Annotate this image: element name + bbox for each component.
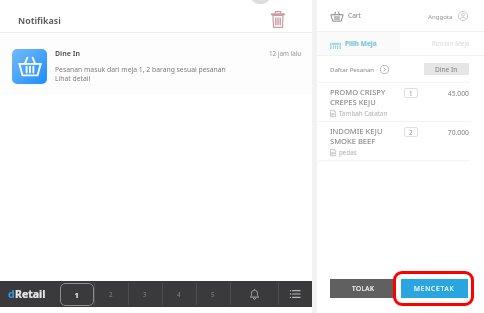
staticText: 4 <box>177 290 181 298</box>
button[interactable]: 4 <box>162 281 196 307</box>
button[interactable]: Hapus semua notifikasi <box>266 6 290 32</box>
staticText: TOLAK <box>352 284 375 293</box>
button[interactable]: Lanjut <box>380 65 389 74</box>
staticText: 1 <box>75 291 79 299</box>
staticText: Lihat detail <box>55 74 91 83</box>
staticText: Pilih Meja <box>345 39 377 48</box>
button[interactable]: 1 <box>60 281 94 307</box>
staticText: 3 <box>143 290 147 298</box>
staticText: INDOMIE KEJU <box>330 126 383 136</box>
staticText: d <box>8 287 15 301</box>
button[interactable]: d <box>0 281 60 307</box>
staticText: Retail <box>15 287 46 301</box>
staticText: PROMO CRISPY <box>330 87 386 97</box>
staticText: MENCETAK <box>414 284 455 293</box>
staticText: Dine In <box>55 49 269 59</box>
staticText: 2 <box>409 128 413 136</box>
button[interactable]: Menu <box>278 281 312 307</box>
staticText: 2 <box>109 290 113 298</box>
staticText: 1 <box>409 89 413 97</box>
staticText: Cart <box>348 11 361 20</box>
staticText: Rincian Meja <box>432 39 470 48</box>
staticText: 5 <box>211 290 215 298</box>
button[interactable]: MENCETAK <box>401 279 468 298</box>
button[interactable]: Pilih Meja <box>317 32 400 55</box>
button[interactable]: Dine In <box>424 63 469 75</box>
staticText: Notifikasi <box>18 15 61 27</box>
button[interactable]: 5 <box>196 281 230 307</box>
button[interactable]: PROMO CRISPY <box>317 83 484 121</box>
staticText: 12 jam lalu <box>269 49 302 58</box>
staticText: CREPES KEJU <box>330 97 376 107</box>
staticText: 70.000 <box>445 128 469 137</box>
staticText: 45.000 <box>445 89 469 98</box>
staticText: pedas <box>339 148 357 157</box>
button[interactable]: Anggota <box>458 11 468 21</box>
staticText: Tambah Catatan <box>339 109 388 118</box>
button[interactable]: INDOMIE KEJU <box>317 122 484 160</box>
button[interactable]: Rincian Meja <box>400 32 484 55</box>
staticText: Daftar Pesanan <box>330 65 375 73</box>
staticText: Anggota <box>428 12 453 20</box>
button[interactable]: TOLAK <box>330 279 396 298</box>
staticText: SMOKE BEEF <box>330 136 376 146</box>
button[interactable]: 2 <box>94 281 128 307</box>
button[interactable]: Notifikasi <box>230 281 278 307</box>
staticText: Pesanan masuk dari meja 1, 2 barang sesu… <box>55 65 226 74</box>
button[interactable]: 3 <box>128 281 162 307</box>
button[interactable]: Dine In <box>0 33 312 95</box>
staticText: Dine In <box>435 65 458 74</box>
